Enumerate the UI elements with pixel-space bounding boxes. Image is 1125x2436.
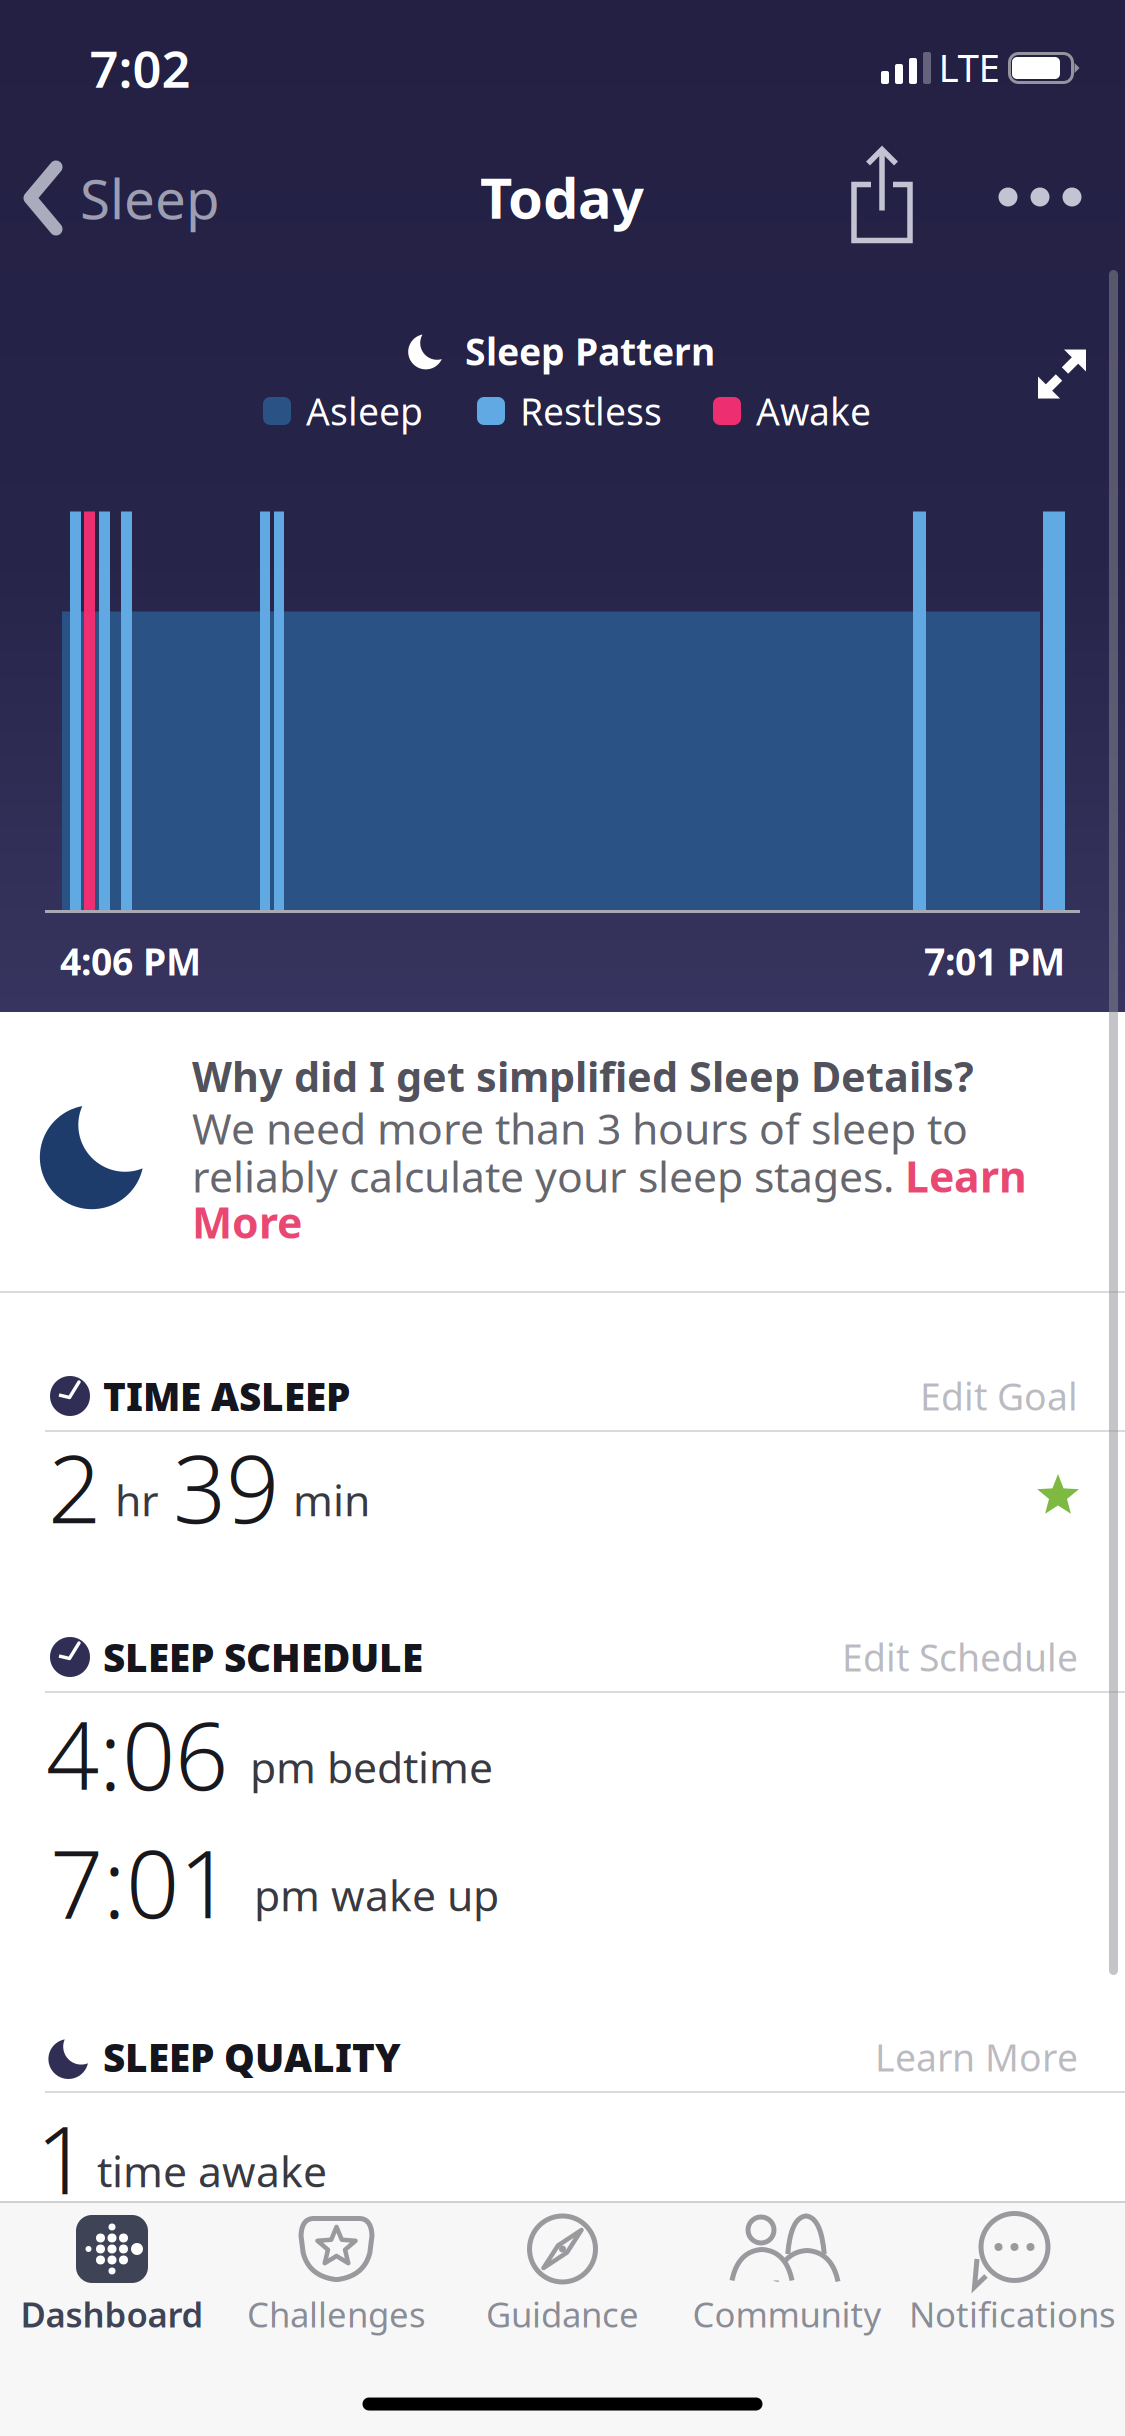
button[interactable]: Edit Goal xyxy=(920,1371,1078,1421)
button[interactable]: Sleep xyxy=(0,158,320,238)
button[interactable]: Learn xyxy=(905,1148,1027,1204)
staticText: LTE xyxy=(938,41,999,93)
staticText: pm bedtime xyxy=(250,1738,493,1795)
staticText: Challenges xyxy=(247,2291,426,2337)
staticText: Learn More xyxy=(875,2032,1078,2082)
staticText: Awake xyxy=(756,386,871,436)
staticText: time awake xyxy=(97,2142,327,2199)
staticText: 4:06 PM xyxy=(60,936,201,986)
button[interactable]: Community xyxy=(676,2207,898,2337)
staticText: We need more than 3 hours of sleep to xyxy=(192,1100,968,1156)
staticText: Edit Schedule xyxy=(842,1632,1078,1682)
staticText: Today xyxy=(480,160,644,234)
staticText: Community xyxy=(692,2291,881,2337)
button[interactable]: Edit Schedule xyxy=(842,1632,1078,1682)
button[interactable]: Notifications xyxy=(901,2207,1123,2337)
staticText: Restless xyxy=(520,386,662,436)
button[interactable]: More xyxy=(998,187,1081,206)
staticText: 7:01 xyxy=(50,1820,232,1944)
button[interactable]: Expand chart xyxy=(1038,349,1086,398)
button[interactable]: Dashboard xyxy=(1,2207,223,2337)
staticText: SLEEP SCHEDULE xyxy=(103,1631,423,1683)
staticText: Sleep xyxy=(80,162,220,234)
button[interactable]: Guidance xyxy=(451,2207,673,2337)
button[interactable]: Learn More xyxy=(875,2032,1078,2082)
staticText: Sleep Pattern xyxy=(465,326,715,376)
button[interactable]: Challenges xyxy=(225,2207,447,2337)
staticText: Notifications xyxy=(909,2291,1116,2337)
staticText: Asleep xyxy=(306,386,423,436)
staticText: reliably calculate your sleep stages. xyxy=(192,1148,905,1204)
staticText: TIME ASLEEP xyxy=(103,1370,350,1422)
staticText: 7:02 xyxy=(89,34,190,102)
staticText: 1 xyxy=(36,2096,89,2220)
staticText: pm wake up xyxy=(254,1866,499,1923)
button[interactable]: More xyxy=(192,1194,302,1250)
staticText: 4:06 xyxy=(46,1692,228,1816)
staticText: Learn xyxy=(905,1148,1027,1204)
staticText: More xyxy=(192,1194,302,1250)
staticText: Dashboard xyxy=(20,2291,203,2337)
staticText: 2 xyxy=(48,1425,101,1549)
staticText: 39 xyxy=(173,1425,279,1549)
staticText: Why did I get simplified Sleep Details? xyxy=(192,1049,974,1103)
button[interactable]: Share xyxy=(854,148,912,243)
staticText: SLEEP QUALITY xyxy=(103,2031,401,2083)
staticText: min xyxy=(293,1471,370,1528)
staticText: hr xyxy=(115,1471,159,1528)
staticText: Edit Goal xyxy=(920,1371,1078,1421)
staticText: 7:01 PM xyxy=(924,936,1065,986)
staticText: Guidance xyxy=(486,2291,639,2337)
